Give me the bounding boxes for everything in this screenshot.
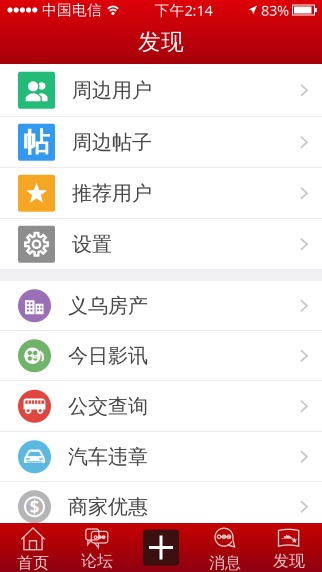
button[interactable]: 周边用户	[0, 64, 322, 117]
staticText: 周边用户	[72, 78, 152, 103]
button[interactable]: 消息	[193, 523, 257, 572]
button[interactable]: 推荐用户	[0, 168, 322, 219]
button[interactable]: 汽车违章	[0, 432, 322, 482]
staticText: 商家优惠	[68, 494, 148, 519]
button[interactable]: 公交查询	[0, 381, 322, 432]
staticText: 公交查询	[68, 394, 148, 419]
staticText: 汽车违章	[68, 444, 148, 469]
staticText: 消息	[209, 553, 241, 572]
staticText: $	[29, 495, 39, 518]
staticText: 推荐用户	[72, 181, 152, 206]
button[interactable]: 今日影讯	[0, 331, 322, 381]
button[interactable]: $	[0, 482, 322, 532]
staticText: 发现	[138, 28, 184, 56]
staticText: 83%	[261, 0, 289, 20]
button[interactable]: 设置	[0, 219, 322, 270]
button[interactable]: 义乌房产	[0, 281, 322, 331]
staticText: 论坛	[81, 551, 113, 571]
staticText: 发现	[273, 551, 305, 571]
button[interactable]: 论坛	[65, 523, 129, 572]
staticText: 设置	[72, 232, 112, 257]
staticText: 首页	[17, 553, 49, 572]
staticText: 下午2:14	[154, 0, 212, 20]
staticText: 帖	[23, 126, 50, 159]
button[interactable]: 发现	[257, 523, 321, 572]
staticText: 今日影讯	[68, 343, 148, 368]
staticText: 中国电信	[42, 1, 102, 19]
staticText: 周边帖子	[72, 130, 152, 155]
button[interactable]: 首页	[1, 523, 65, 572]
staticText: 义乌房产	[68, 293, 148, 318]
button[interactable]: 帖	[0, 117, 322, 168]
button[interactable]: 新建	[129, 523, 193, 572]
